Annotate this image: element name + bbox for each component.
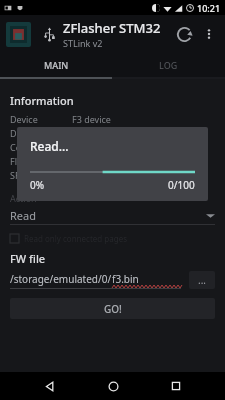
staticText: Read xyxy=(10,208,36,223)
staticText: STLink v2 xyxy=(63,37,103,49)
button[interactable]: App icon xyxy=(6,22,31,47)
staticText: LOG xyxy=(159,59,178,71)
staticText: 0/100 xyxy=(168,178,195,192)
staticText: ... xyxy=(198,273,207,287)
button[interactable]: More options xyxy=(199,24,219,44)
staticText: Device xyxy=(10,113,72,125)
staticText: /storage/emulated/0/ xyxy=(10,272,112,286)
staticText: FW file xyxy=(10,251,46,266)
staticText: Action xyxy=(10,192,37,204)
staticText: SRAM xyxy=(10,169,72,181)
staticText: f3.bin xyxy=(112,272,139,286)
button[interactable]: GO! xyxy=(10,298,215,319)
staticText: Read only connected pages xyxy=(24,233,127,244)
staticText: 40 KB xyxy=(72,169,97,181)
button[interactable]: Read xyxy=(10,206,215,224)
staticText: GO! xyxy=(104,302,122,316)
button[interactable]: Recent apps xyxy=(162,372,190,400)
staticText: F3 device xyxy=(72,113,111,125)
staticText: MAIN xyxy=(44,59,69,71)
button[interactable]: ... xyxy=(189,271,215,289)
staticText: Read... xyxy=(30,138,69,154)
button[interactable]: USB connection xyxy=(41,26,57,42)
button[interactable]: MAIN xyxy=(0,53,112,77)
staticText: Core xyxy=(10,141,72,153)
button[interactable]: Home xyxy=(99,372,127,400)
staticText: 0% xyxy=(30,178,45,192)
button[interactable]: Refresh xyxy=(173,23,195,45)
button[interactable]: Back xyxy=(35,372,63,400)
button[interactable]: LOG xyxy=(112,53,225,77)
button[interactable]: Read only connected pages xyxy=(10,231,215,245)
staticText: Flash xyxy=(10,155,72,167)
button[interactable]: /storage/emulated/0/ xyxy=(10,272,181,289)
staticText: Information xyxy=(10,93,74,108)
staticText: ZFlasher STM32 xyxy=(63,19,161,37)
staticText: 10:21 xyxy=(197,2,221,14)
staticText: Device ID xyxy=(10,127,72,139)
